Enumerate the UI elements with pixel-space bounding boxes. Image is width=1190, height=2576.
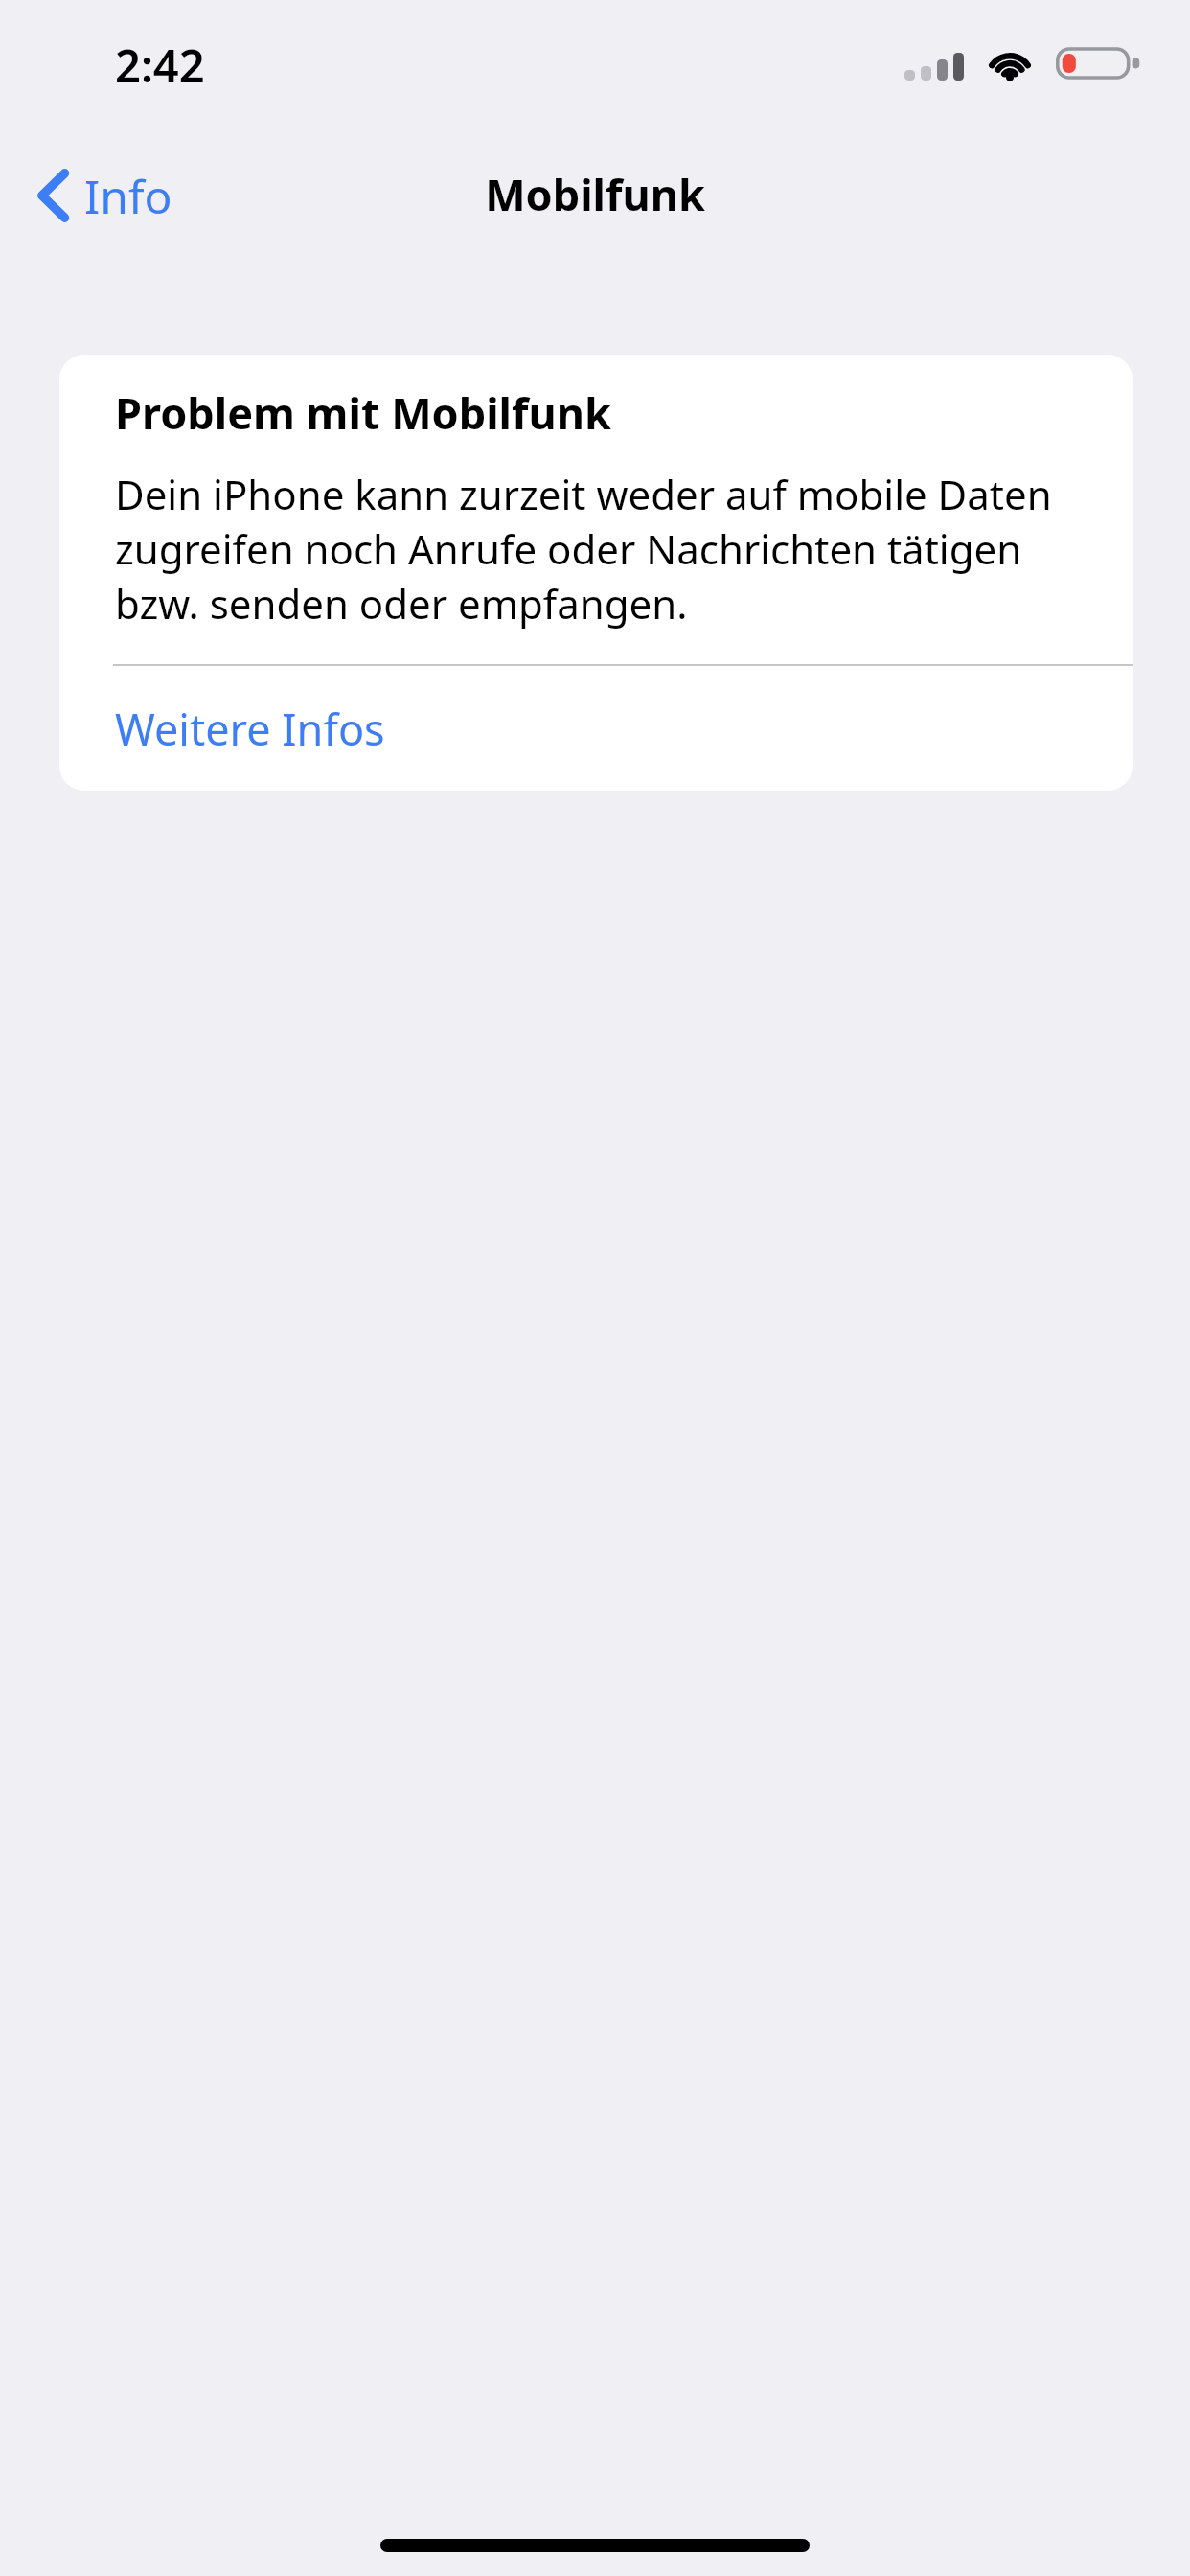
staticText: Problem mit Mobilfunk [115, 383, 611, 442]
staticText: 2:42 [115, 34, 205, 96]
button[interactable]: Weitere Infos [59, 666, 1133, 791]
staticText: Dein iPhone kann zurzeit weder auf mobil… [115, 467, 1088, 631]
staticText: Mobilfunk [485, 165, 705, 223]
button[interactable]: Info [25, 155, 188, 236]
other: Home indicator [380, 2539, 810, 2552]
staticText: Info [84, 165, 172, 227]
staticText: Weitere Infos [115, 700, 385, 758]
